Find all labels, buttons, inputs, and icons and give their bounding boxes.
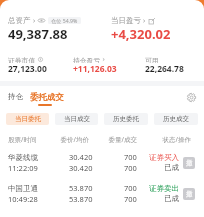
staticText: 历史委托	[113, 115, 139, 123]
staticText: 11:22:09	[8, 163, 38, 173]
button[interactable]: 历史委托	[104, 113, 148, 125]
staticText: +4,320.02	[111, 25, 171, 43]
staticText: 总资产	[8, 16, 31, 25]
staticText: 700	[124, 183, 137, 193]
button[interactable]: 当日成交	[55, 113, 98, 125]
staticText: 已成	[164, 194, 179, 203]
staticText: 可用	[145, 56, 159, 63]
staticText: 已成	[164, 163, 179, 172]
staticText: 持仓	[8, 92, 24, 102]
staticText: 中国卫通	[8, 184, 38, 193]
staticText: 历史成交	[163, 115, 189, 123]
staticText: 证券市值	[8, 56, 36, 63]
staticText: 股票/时间	[8, 135, 48, 144]
staticText: 22,264.78	[145, 63, 184, 75]
staticText: 证券买入	[149, 153, 179, 162]
staticText: 53.870	[69, 194, 93, 204]
staticText: 700	[124, 152, 137, 162]
staticText: 当日委托	[15, 115, 41, 123]
staticText: 10:49:28	[8, 194, 38, 204]
button[interactable]: 中国卫通	[0, 183, 204, 204]
staticText: 证券卖出	[149, 184, 179, 193]
staticText: 当日盈亏	[111, 16, 141, 25]
staticText: 委量/成交	[89, 135, 137, 144]
staticText: 53.870	[69, 183, 93, 193]
button[interactable]: 华菱线缆	[0, 152, 204, 173]
staticText: 状态/操作	[137, 135, 191, 144]
staticText: 委价/均价	[48, 135, 89, 144]
button[interactable]: 当日委托	[6, 113, 49, 125]
staticText: 持仓盈亏	[73, 56, 101, 63]
button[interactable]: Settings	[186, 92, 196, 102]
staticText: 49,387.88	[8, 25, 68, 43]
staticText: 30.420	[69, 152, 93, 162]
staticText: 撤	[186, 190, 193, 198]
staticText: 撤	[186, 159, 193, 167]
button[interactable]: 撤	[183, 188, 195, 200]
staticText: 700	[124, 163, 137, 173]
staticText: 当日成交	[64, 115, 90, 123]
button[interactable]: 历史成交	[154, 113, 198, 125]
button[interactable]: 持仓	[8, 92, 24, 102]
staticText: 30.420	[69, 163, 93, 173]
button[interactable]: 撤	[183, 157, 195, 169]
staticText: 仓位 54.9%	[51, 17, 78, 24]
staticText: 27,123.00	[8, 63, 47, 75]
staticText: 华菱线缆	[8, 153, 38, 162]
staticText: 委托成交	[30, 92, 64, 103]
staticText: +11,126.03	[73, 63, 117, 75]
staticText: 700	[124, 194, 137, 204]
button[interactable]: 委托成交	[30, 92, 64, 106]
